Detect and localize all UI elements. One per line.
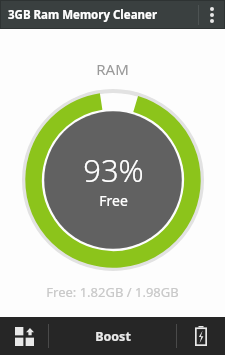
button[interactable]: Boost xyxy=(49,317,176,355)
button[interactable]: More options xyxy=(199,1,224,28)
staticText: 93% xyxy=(83,149,144,191)
staticText: Free: 1.82GB / 1.98GB xyxy=(46,283,179,301)
button[interactable]: App manager xyxy=(0,317,48,355)
staticText: Free xyxy=(99,191,128,210)
staticText: 3GB Ram Memory Cleaner xyxy=(8,7,158,23)
staticText: Boost xyxy=(95,328,131,345)
button[interactable]: Battery saver xyxy=(177,317,225,355)
staticText: RAM xyxy=(96,59,129,79)
